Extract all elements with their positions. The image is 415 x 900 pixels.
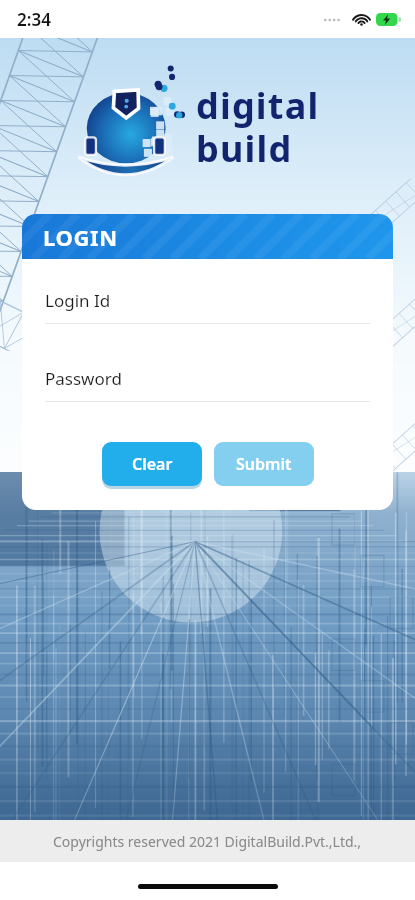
staticText: digital xyxy=(196,81,320,130)
button[interactable]: Submit xyxy=(214,442,314,486)
staticText: LOGIN xyxy=(43,222,118,252)
staticText: Password xyxy=(45,367,122,390)
button[interactable]: Clear xyxy=(102,442,202,486)
staticText: Submit xyxy=(236,453,292,475)
staticText: build xyxy=(196,124,293,173)
staticText: Login Id xyxy=(45,289,111,312)
staticText: Copyrights reserved 2021 DigitalBuild.Pv… xyxy=(53,832,362,851)
staticText: 2:34 xyxy=(17,8,51,31)
staticText: Clear xyxy=(132,453,173,475)
button[interactable]: Login Id xyxy=(45,289,370,324)
button[interactable]: Password xyxy=(45,367,370,402)
